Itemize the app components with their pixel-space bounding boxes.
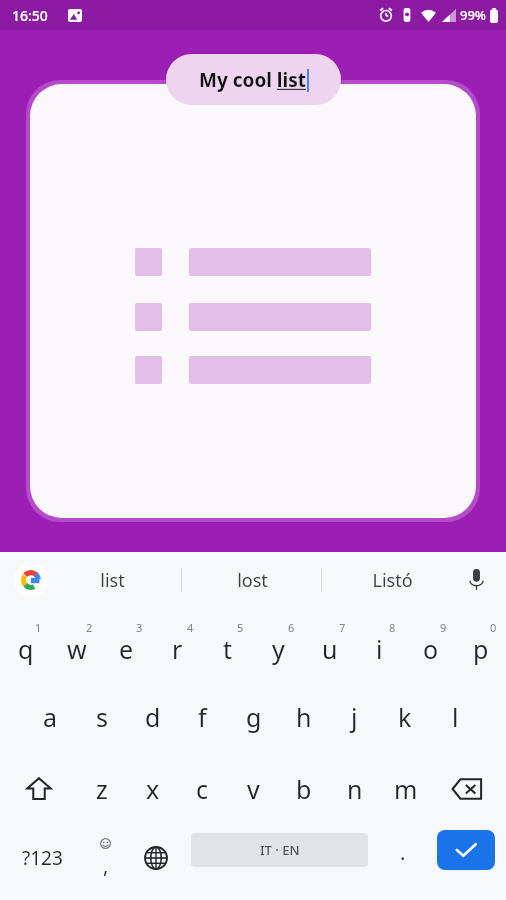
staticText: list xyxy=(100,568,125,593)
button[interactable]: Listó xyxy=(334,552,450,608)
button[interactable]: m xyxy=(380,754,431,824)
staticText: 2 xyxy=(86,620,93,635)
staticText: 16:50 xyxy=(12,6,48,25)
staticText: n xyxy=(347,772,363,806)
staticText: ?123 xyxy=(22,845,63,871)
button[interactable]: lost xyxy=(194,552,310,608)
button[interactable]: e xyxy=(101,610,152,680)
button[interactable]: i xyxy=(354,610,405,680)
staticText: l xyxy=(452,700,459,734)
button[interactable]: Backspace xyxy=(432,754,502,824)
staticText: . xyxy=(400,839,406,866)
staticText: , xyxy=(103,852,109,879)
staticText: 0 xyxy=(490,620,497,635)
button[interactable]: Enter xyxy=(437,830,495,870)
staticText: p xyxy=(473,632,489,666)
button[interactable]: x xyxy=(127,754,178,824)
staticText: w xyxy=(67,632,87,666)
button[interactable]: c xyxy=(177,754,228,824)
staticText: b xyxy=(296,772,312,806)
staticText: 9 xyxy=(440,620,447,635)
staticText: t xyxy=(223,632,233,666)
staticText: 3 xyxy=(136,620,143,635)
button[interactable]: y xyxy=(253,610,304,680)
staticText: q xyxy=(18,632,34,666)
staticText: h xyxy=(296,700,312,734)
button[interactable]: t xyxy=(202,610,253,680)
staticText: k xyxy=(398,700,412,734)
button[interactable]: My cool list xyxy=(166,54,341,105)
button[interactable]: b xyxy=(278,754,329,824)
staticText: m xyxy=(394,772,418,806)
button[interactable]: k xyxy=(379,682,430,752)
button[interactable]: Google xyxy=(14,563,48,597)
staticText: i xyxy=(376,632,383,666)
button[interactable]: f xyxy=(177,682,228,752)
button[interactable]: Voice input xyxy=(462,566,490,594)
staticText: z xyxy=(96,772,108,806)
button[interactable]: z xyxy=(76,754,127,824)
staticText: u xyxy=(322,632,338,666)
staticText: o xyxy=(423,632,439,666)
button[interactable]: p xyxy=(455,610,506,680)
button[interactable]: Shift xyxy=(4,754,74,824)
button[interactable]: j xyxy=(329,682,380,752)
staticText: d xyxy=(145,700,161,734)
staticText: lost xyxy=(237,568,268,593)
staticText: IT · EN xyxy=(260,841,300,859)
staticText: s xyxy=(96,700,108,734)
button[interactable]: Change language xyxy=(130,826,182,890)
staticText: v xyxy=(247,772,260,806)
button[interactable]: n xyxy=(329,754,380,824)
button[interactable]: ?123 xyxy=(4,826,80,890)
staticText: j xyxy=(351,700,358,734)
staticText: f xyxy=(198,700,207,734)
button[interactable]: u xyxy=(304,610,355,680)
staticText: 99% xyxy=(460,6,486,24)
staticText: e xyxy=(119,632,134,666)
button[interactable]: g xyxy=(228,682,279,752)
staticText: c xyxy=(196,772,209,806)
staticText: 7 xyxy=(339,620,346,635)
button[interactable]: r xyxy=(152,610,203,680)
button[interactable]: o xyxy=(405,610,456,680)
staticText: y xyxy=(272,632,285,666)
button[interactable]: , xyxy=(80,826,130,890)
button[interactable]: h xyxy=(278,682,329,752)
button[interactable]: w xyxy=(51,610,102,680)
button[interactable]: a xyxy=(25,682,76,752)
button[interactable]: l xyxy=(430,682,481,752)
staticText: My cool list xyxy=(199,67,306,93)
staticText: x xyxy=(146,772,160,806)
staticText: 1 xyxy=(35,620,42,635)
button[interactable]: list xyxy=(54,552,170,608)
staticText: 4 xyxy=(187,620,194,635)
staticText: Listó xyxy=(372,568,413,593)
button[interactable]: d xyxy=(127,682,178,752)
button[interactable]: s xyxy=(76,682,127,752)
staticText: 5 xyxy=(237,620,244,635)
button[interactable]: v xyxy=(228,754,279,824)
button[interactable]: Space xyxy=(191,833,368,867)
button[interactable]: . xyxy=(378,826,428,890)
staticText: a xyxy=(43,700,58,734)
button[interactable]: q xyxy=(0,610,51,680)
staticText: r xyxy=(172,632,183,666)
staticText: g xyxy=(246,700,262,734)
staticText: 8 xyxy=(389,620,396,635)
staticText: 6 xyxy=(288,620,295,635)
